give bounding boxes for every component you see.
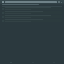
button[interactable]	[2, 7, 62, 10]
button[interactable]	[2, 11, 62, 14]
button[interactable]	[2, 15, 62, 18]
button[interactable]	[2, 19, 62, 22]
button[interactable]: Navigate up	[2, 1, 4, 3]
